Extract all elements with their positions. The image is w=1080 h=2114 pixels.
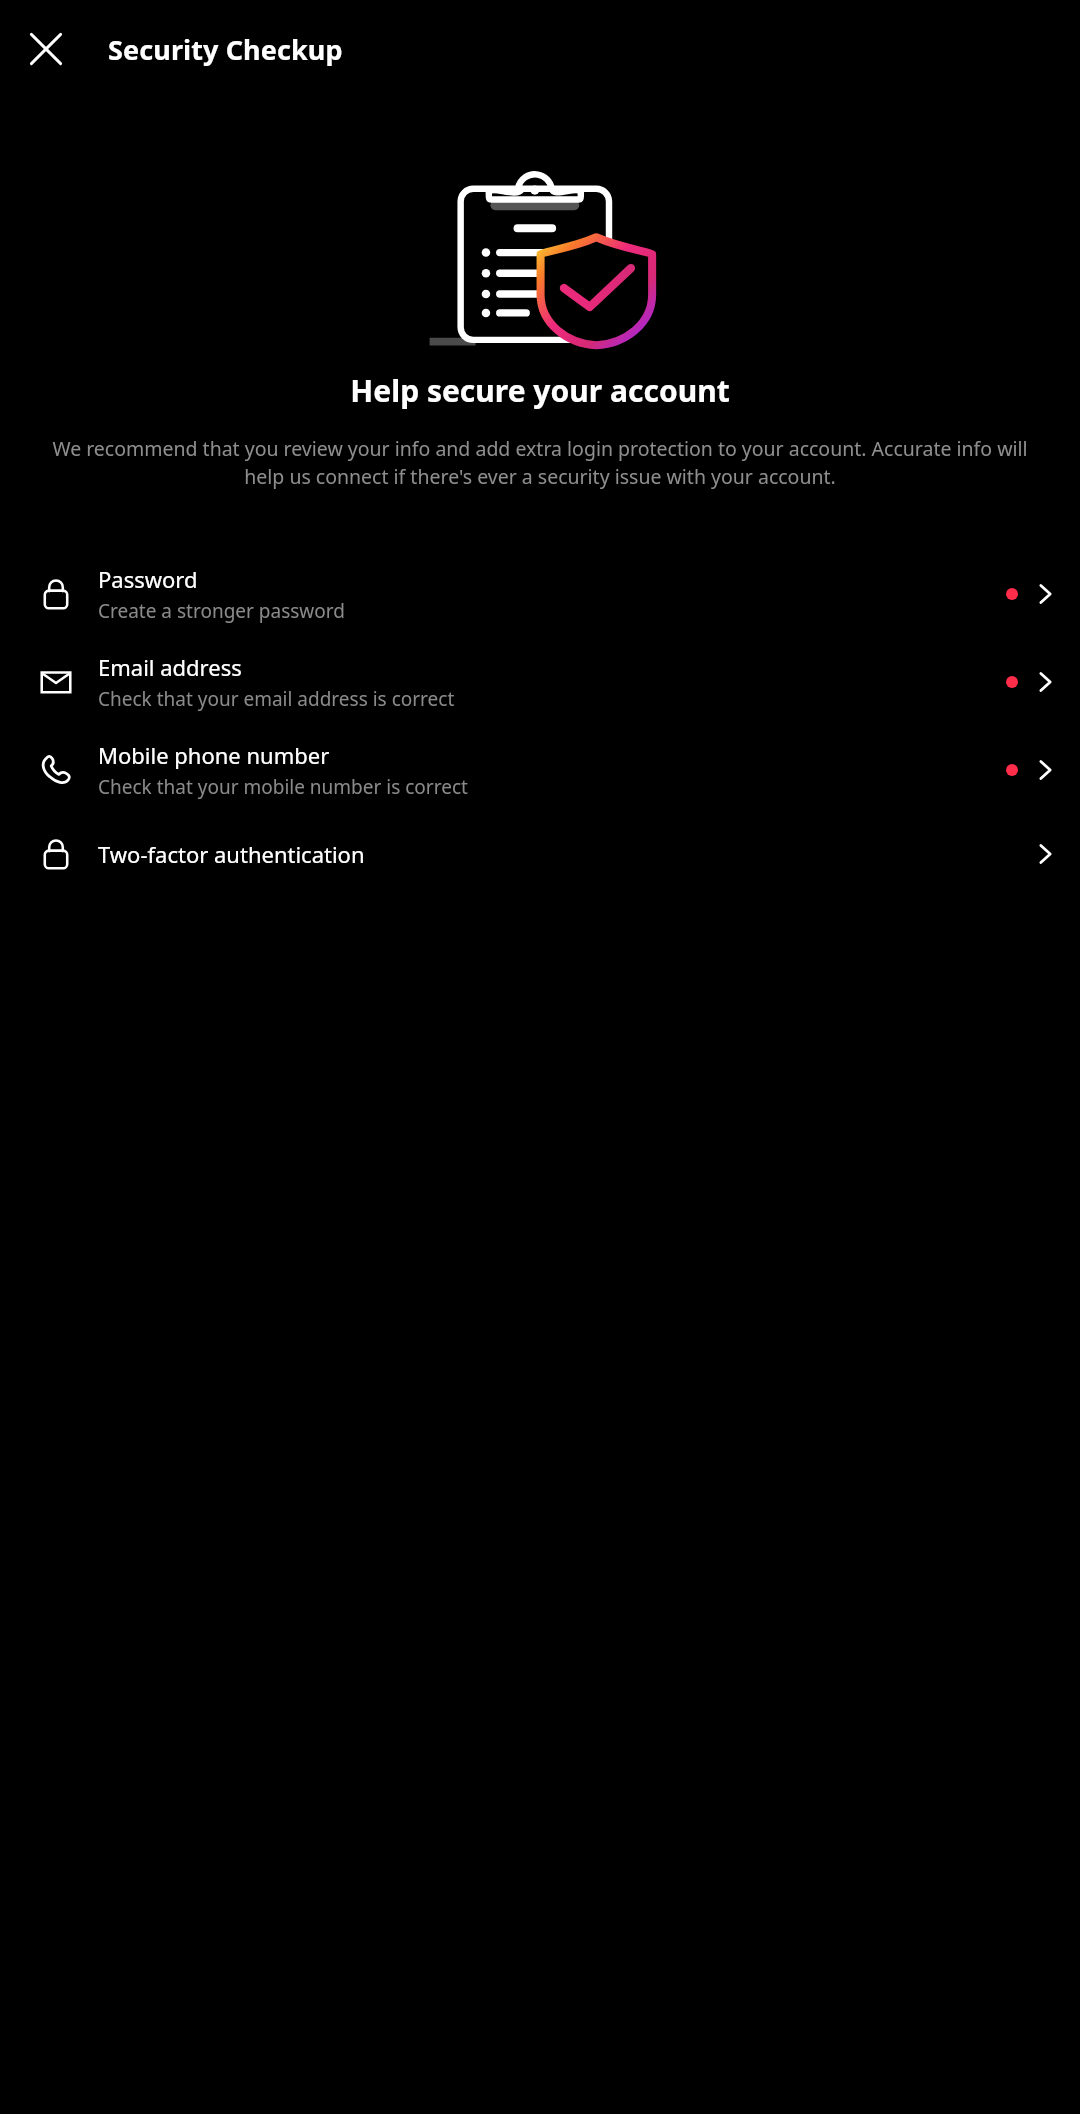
staticText: Check that your email address is correct <box>98 686 455 712</box>
staticText: Email address <box>98 652 242 682</box>
button[interactable]: Password <box>0 550 1080 638</box>
button[interactable]: Two-factor authentication <box>0 814 1080 894</box>
staticText: We recommend that you review your info a… <box>48 435 1032 490</box>
button[interactable]: Close <box>10 13 82 85</box>
staticText: Create a stronger password <box>98 598 345 624</box>
staticText: Password <box>98 564 198 594</box>
button[interactable]: Email address <box>0 638 1080 726</box>
staticText: Help secure your account <box>24 370 1056 411</box>
staticText: Check that your mobile number is correct <box>98 774 468 800</box>
staticText: Security Checkup <box>108 31 343 68</box>
staticText: Two-factor authentication <box>98 839 365 869</box>
button[interactable]: Mobile phone number <box>0 726 1080 814</box>
staticText: Mobile phone number <box>98 740 330 770</box>
